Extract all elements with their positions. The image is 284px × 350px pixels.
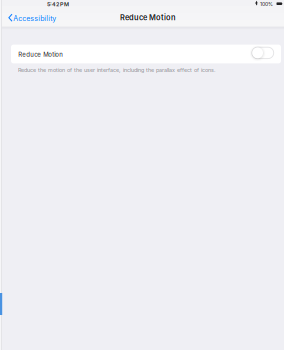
staticText: Accessibility xyxy=(13,14,56,23)
staticText: Reduce Motion xyxy=(18,51,63,58)
staticText: Reduce Motion xyxy=(120,13,176,22)
staticText: 5:42 PM xyxy=(47,1,69,8)
staticText: Reduce the motion of the user interface,… xyxy=(18,67,216,73)
button[interactable]: Reduce Motion, off xyxy=(252,47,274,59)
button[interactable]: Reduce Motion xyxy=(11,45,281,63)
staticText: 100% xyxy=(260,1,273,7)
button[interactable]: Accessibility xyxy=(0,10,66,25)
